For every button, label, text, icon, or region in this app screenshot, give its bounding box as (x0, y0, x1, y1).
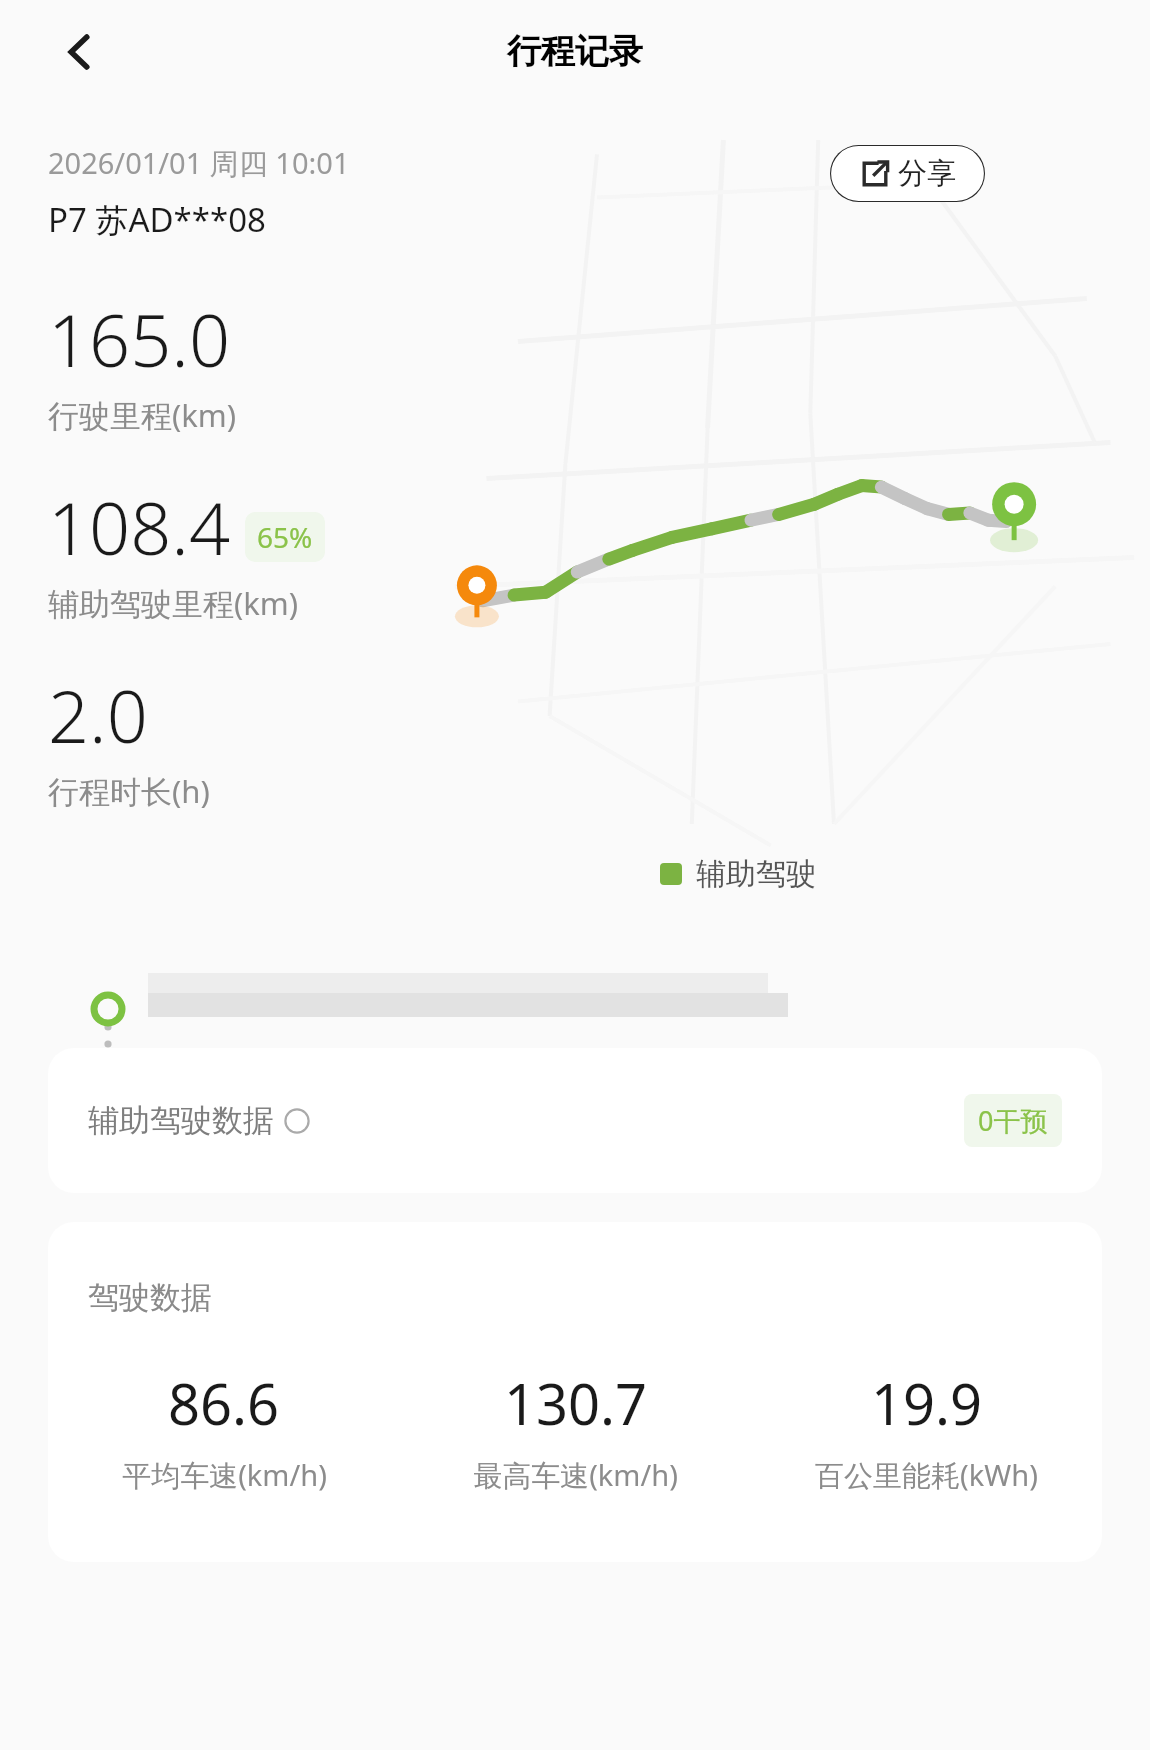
staticText: 驾驶数据 (88, 1278, 212, 1317)
staticText: 0干预 (978, 1102, 1048, 1139)
staticText: 2.0 (48, 666, 148, 764)
staticText: 辅助驾驶 (696, 855, 816, 893)
button[interactable]: 辅助驾驶数据 (48, 1048, 1102, 1193)
staticText: 19.9 (871, 1365, 983, 1441)
staticText: 行驶里程(km) (48, 394, 237, 436)
staticText: P7 苏AD***08 (48, 197, 266, 242)
staticText: 165.0 (48, 290, 231, 388)
staticText: 平均车速(km/h) (122, 1455, 327, 1495)
staticText: 65% (257, 518, 313, 556)
staticText: 2026/01/01 周四 10:01 (48, 143, 350, 183)
staticText: 130.7 (504, 1365, 648, 1441)
staticText: 行程时长(h) (48, 770, 210, 812)
button[interactable]: 分享 (830, 145, 985, 202)
staticText: 108.4 (48, 478, 231, 576)
staticText: 行程记录 (507, 30, 643, 73)
staticText: 86.6 (168, 1365, 280, 1441)
staticText: 分享 (898, 155, 956, 192)
staticText: 百公里能耗(kWh) (815, 1455, 1038, 1495)
staticText: 最高车速(km/h) (473, 1455, 678, 1495)
button[interactable]: Back (48, 20, 112, 84)
staticText: 辅助驾驶数据 (88, 1101, 274, 1140)
staticText: 辅助驾驶里程(km) (48, 582, 299, 624)
